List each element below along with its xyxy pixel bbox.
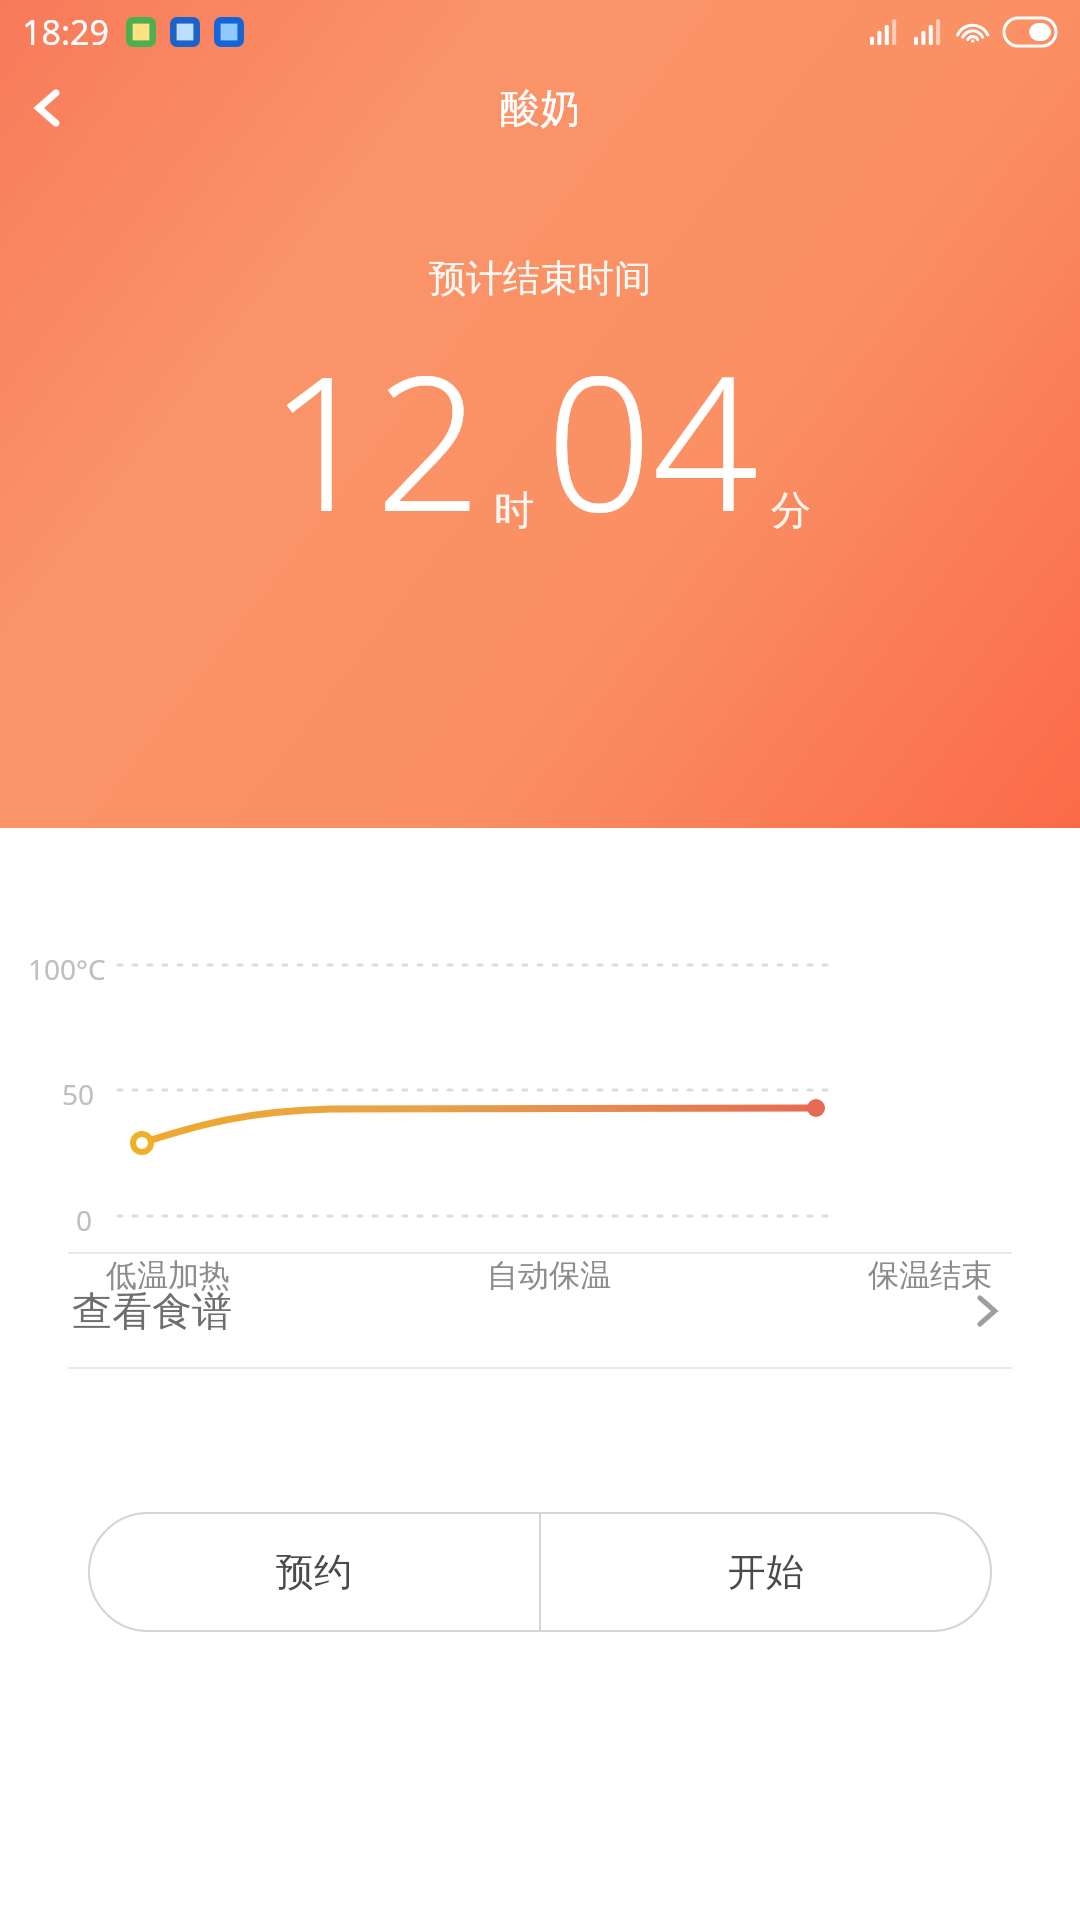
staticText: 保温结束 <box>868 1256 992 1295</box>
staticText: 预计结束时间 <box>429 255 651 302</box>
staticText: 18:29 <box>22 9 109 55</box>
staticText: 12 <box>269 312 482 565</box>
staticText: 0 <box>76 1201 93 1239</box>
staticText: 100°C <box>28 950 106 988</box>
staticText: 开始 <box>728 1548 804 1596</box>
staticText: 04 <box>546 312 759 565</box>
staticText: 低温加热 <box>106 1256 230 1295</box>
button[interactable]: 查看食谱 <box>0 1254 1080 1367</box>
staticText: 酸奶 <box>500 83 580 133</box>
staticText: 查看食谱 <box>72 1286 232 1336</box>
button[interactable]: 预约 <box>88 1512 540 1632</box>
staticText: 自动保温 <box>487 1256 611 1295</box>
staticText: 50 <box>62 1075 95 1113</box>
staticText: 分 <box>771 485 811 535</box>
staticText: 预约 <box>276 1548 352 1596</box>
staticText: 时 <box>494 485 534 535</box>
button[interactable]: 开始 <box>540 1512 992 1632</box>
button[interactable]: Back <box>0 64 96 152</box>
